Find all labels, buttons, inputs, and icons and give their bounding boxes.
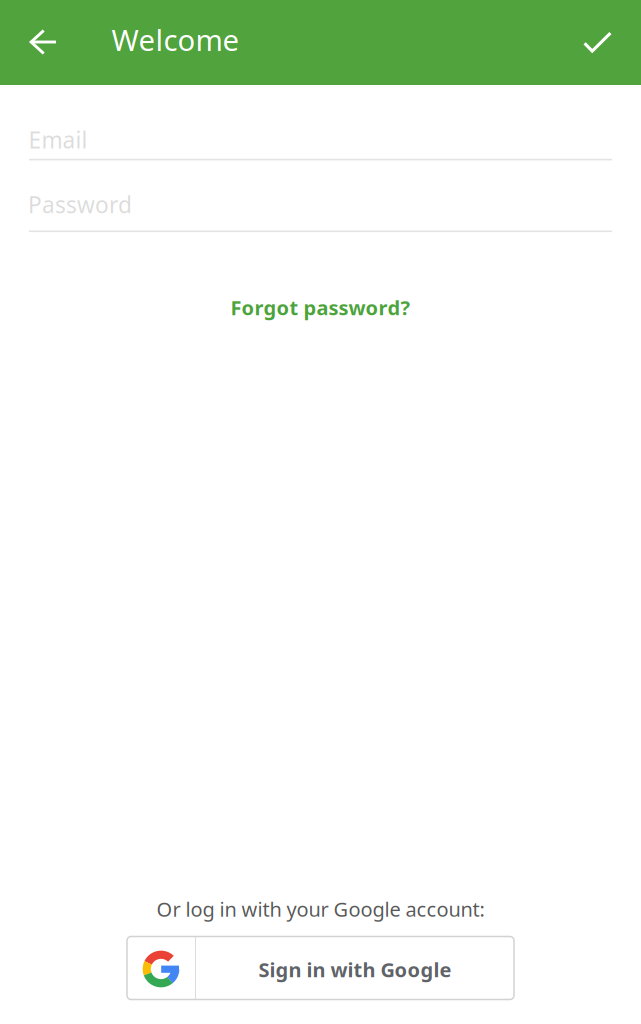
staticText: Email xyxy=(28,125,87,155)
button[interactable]: Sign in with Google xyxy=(127,936,514,999)
staticText: Welcome xyxy=(111,20,239,59)
button[interactable]: Password xyxy=(29,184,612,232)
staticText: Or log in with your Google account: xyxy=(156,896,484,922)
button[interactable]: Confirm xyxy=(571,14,623,70)
button[interactable]: Forgot password? xyxy=(216,285,424,330)
staticText: Password xyxy=(28,189,132,219)
button[interactable]: Back xyxy=(17,14,69,70)
staticText: Sign in with Google xyxy=(258,956,451,983)
button[interactable]: Email xyxy=(29,113,612,161)
staticText: Forgot password? xyxy=(230,294,410,321)
button[interactable]: Welcome xyxy=(105,7,245,72)
